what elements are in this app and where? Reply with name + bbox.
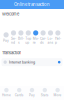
button[interactable]: Help: [55, 30, 61, 44]
staticText: Welcome: [2, 11, 19, 16]
button[interactable]: Loans: [47, 30, 54, 44]
button[interactable]: Internet banking: [1, 58, 62, 66]
button[interactable]: Cards: [40, 30, 46, 44]
button[interactable]: Bills: [18, 30, 24, 44]
button[interactable]: Stats: [38, 88, 51, 97]
staticText: More: [33, 37, 39, 44]
button[interactable]: More: [32, 30, 39, 44]
button[interactable]: Send: [10, 30, 17, 44]
button[interactable]: Top up: [25, 30, 31, 44]
button[interactable]: Pay: [26, 88, 38, 97]
staticText: More: [54, 93, 62, 97]
staticText: Help: [55, 37, 61, 44]
staticText: Cards: [15, 93, 24, 97]
staticText: Cards: [40, 37, 46, 44]
staticText: Online transaction: [14, 2, 50, 7]
button[interactable]: Pay: [3, 32, 9, 43]
staticText: Bills: [18, 37, 24, 44]
staticText: Top up: [25, 37, 31, 44]
staticText: Internet banking: [9, 60, 35, 64]
button[interactable]: Cards: [13, 88, 26, 97]
staticText: Loans: [47, 37, 53, 44]
staticText: Home: [2, 93, 11, 97]
staticText: Pay: [29, 93, 35, 97]
staticText: Send: [11, 37, 16, 44]
button[interactable]: More: [51, 88, 64, 97]
staticText: Transaction: [2, 50, 21, 55]
button[interactable]: Home: [0, 88, 13, 97]
staticText: Stats: [41, 93, 49, 97]
staticText: Pay: [3, 39, 9, 43]
